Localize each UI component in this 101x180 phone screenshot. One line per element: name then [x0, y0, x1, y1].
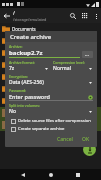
staticText: 7z [9, 65, 45, 72]
button[interactable]: Back [0, 9, 13, 22]
button[interactable]: Grid view [79, 10, 91, 22]
staticText: Delete source files after compression [18, 118, 91, 124]
button[interactable]: Download [0, 35, 101, 47]
button[interactable]: Home [46, 170, 56, 180]
staticText: Create separate archive [18, 126, 65, 132]
button[interactable]: Search [67, 10, 79, 22]
button[interactable]: Delete source files after compression [9, 118, 93, 124]
staticText: Download [12, 38, 33, 44]
staticText: Encryption: [9, 74, 29, 79]
staticText: Cancel [57, 136, 73, 143]
button[interactable]: Music [0, 59, 101, 71]
staticText: Documents [12, 26, 36, 32]
staticText: Pictures [12, 74, 29, 80]
staticText: Split into volumes: [9, 103, 41, 108]
staticText: Ringtones [12, 98, 33, 104]
button[interactable]: Documents [0, 23, 101, 35]
button[interactable]: Cancel [54, 135, 76, 144]
staticText: backup2.7z [9, 49, 43, 57]
staticText: Password: [9, 88, 27, 93]
button[interactable]: Browse [82, 51, 93, 58]
staticText: /storage/emulated [13, 17, 47, 22]
button[interactable]: Data (AES-256) [9, 79, 93, 86]
button[interactable]: 8.7z [0, 107, 101, 119]
staticText: Compression level: [53, 60, 85, 65]
staticText: Create archive [10, 33, 52, 41]
staticText: / [13, 10, 15, 17]
button[interactable]: Podcasts [0, 83, 101, 95]
button[interactable]: Movies [0, 47, 101, 59]
staticText: Data (AES-256) [9, 79, 89, 86]
staticText: Archive format: [9, 60, 35, 65]
staticText: Movies [12, 50, 27, 56]
button[interactable]: Extract [83, 143, 96, 156]
staticText: Music [12, 62, 25, 68]
staticText: OK [82, 136, 90, 143]
staticText: 8.7z [12, 110, 21, 116]
button[interactable]: More options [91, 11, 101, 21]
staticText: No [9, 108, 89, 115]
staticText: Archive: [9, 44, 23, 49]
button[interactable]: OK [79, 135, 93, 144]
staticText: filme2018.7z.7z [12, 122, 44, 128]
staticText: Podcasts [12, 86, 31, 92]
button[interactable]: 7z [9, 65, 49, 72]
button[interactable]: filme2018.7z.7z [0, 119, 101, 131]
button[interactable]: Ringtones [0, 95, 101, 107]
button[interactable]: Back [18, 170, 28, 180]
button[interactable]: Create separate archive [9, 126, 93, 132]
staticText: Normal [53, 65, 89, 72]
button[interactable]: Normal [53, 65, 93, 72]
staticText: ... [85, 51, 90, 58]
staticText: Enter password [9, 93, 87, 100]
button[interactable]: backup2.7z [9, 49, 80, 58]
button[interactable]: Recents [73, 170, 83, 180]
button[interactable]: No [9, 108, 93, 115]
button[interactable]: Show password [87, 94, 93, 100]
button[interactable]: Enter password [9, 93, 93, 100]
button[interactable]: Pictures [0, 71, 101, 83]
